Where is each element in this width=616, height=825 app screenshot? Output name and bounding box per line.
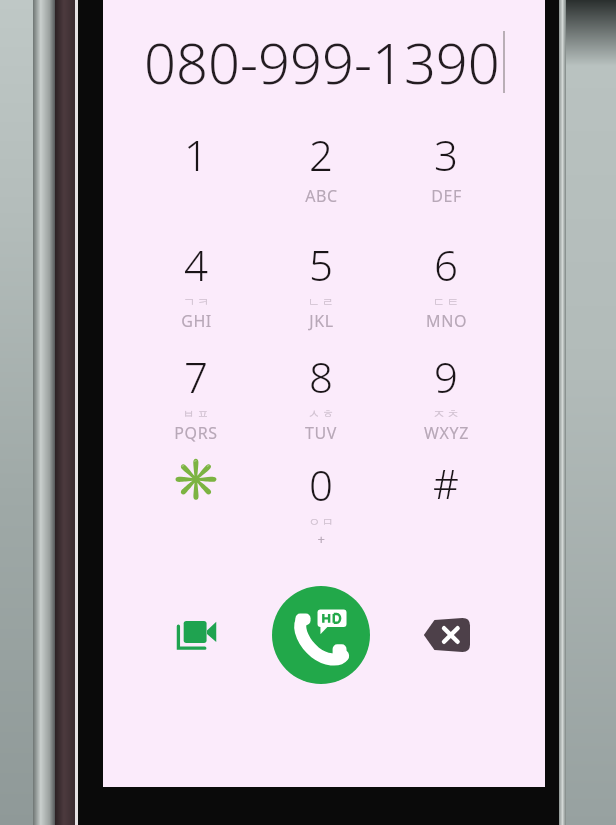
- staticText: 2: [309, 126, 333, 183]
- button[interactable]: 8: [262, 348, 380, 452]
- staticText: ㅅㅎ: [307, 406, 335, 421]
- button[interactable]: 2: [262, 126, 380, 230]
- button[interactable]: 5: [262, 236, 380, 340]
- staticText: ㄱㅋ: [182, 294, 210, 309]
- staticText: 3: [434, 126, 458, 183]
- staticText: MNO: [426, 310, 467, 332]
- staticText: ㄴㄹ: [307, 294, 335, 309]
- staticText: 9: [434, 348, 458, 405]
- button[interactable]: 0: [262, 456, 380, 560]
- staticText: 0: [309, 456, 333, 513]
- button[interactable]: Video call: [162, 601, 230, 669]
- staticText: PQRS: [174, 422, 218, 444]
- staticText: ABC: [305, 185, 338, 207]
- staticText: ㅂㅍ: [182, 406, 210, 421]
- button[interactable]: 7: [137, 348, 255, 452]
- button[interactable]: 3: [387, 126, 505, 230]
- staticText: 6: [434, 236, 458, 293]
- staticText: DEF: [431, 185, 462, 207]
- button[interactable]: 6: [387, 236, 505, 340]
- button[interactable]: 1: [137, 126, 255, 230]
- staticText: WXYZ: [424, 422, 469, 444]
- staticText: ✳: [171, 456, 221, 503]
- staticText: 7: [184, 348, 208, 405]
- staticText: 8: [309, 348, 333, 405]
- staticText: ㄷㅌ: [432, 294, 460, 309]
- staticText: GHI: [181, 310, 212, 332]
- staticText: 1: [184, 126, 208, 183]
- staticText: 4: [184, 236, 208, 293]
- button[interactable]: ✳: [137, 456, 255, 560]
- staticText: +: [317, 530, 326, 548]
- staticText: TUV: [305, 422, 337, 444]
- button[interactable]: 9: [387, 348, 505, 452]
- staticText: #: [433, 456, 459, 510]
- staticText: 5: [309, 236, 333, 293]
- button[interactable]: Call: [272, 586, 370, 684]
- button[interactable]: #: [387, 456, 505, 560]
- staticText: JKL: [309, 310, 334, 332]
- button[interactable]: 4: [137, 236, 255, 340]
- staticText: 080-999-1390: [144, 24, 500, 100]
- staticText: ㅇㅁ: [307, 514, 335, 529]
- button[interactable]: Backspace: [412, 605, 480, 665]
- staticText: ㅈㅊ: [432, 406, 460, 421]
